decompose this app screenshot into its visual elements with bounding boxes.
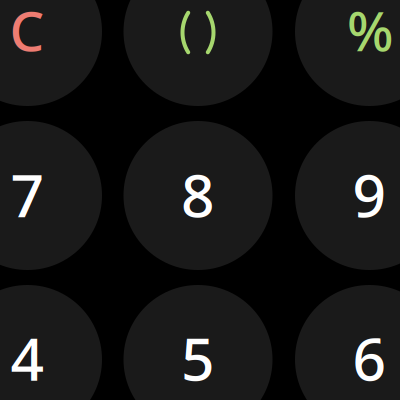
staticText: 7 [10,155,44,233]
button[interactable]: % [295,0,400,106]
staticText: 5 [181,319,215,397]
staticText: 6 [352,319,386,397]
staticText: 8 [181,155,215,233]
button[interactable]: 4 [0,285,102,400]
button[interactable]: 9 [295,121,400,270]
button[interactable]: 7 [0,121,102,270]
button[interactable]: 5 [123,285,272,400]
staticText: C [9,0,44,66]
staticText: 4 [10,319,44,397]
staticText: 9 [352,155,386,233]
button[interactable]: Parentheses [123,0,272,106]
staticText: % [347,0,394,66]
button[interactable]: C [0,0,102,106]
button[interactable]: 8 [123,121,272,270]
button[interactable]: 6 [295,285,400,400]
